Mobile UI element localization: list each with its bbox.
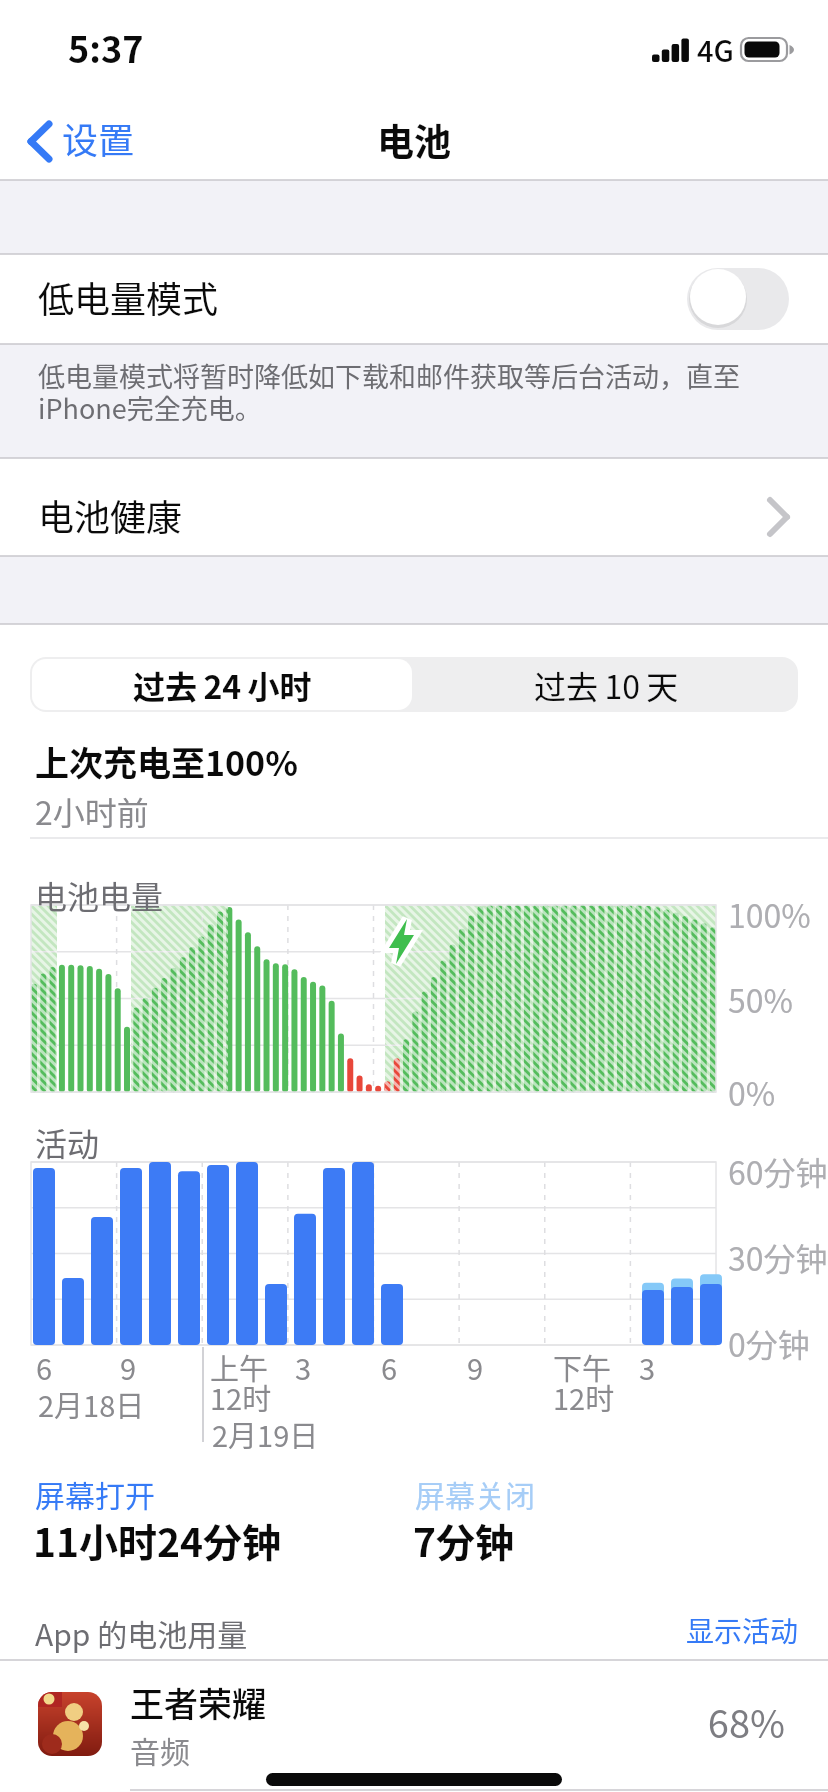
- staticText: App 的电池用量: [35, 1611, 248, 1654]
- staticText: 王者荣耀: [130, 1678, 266, 1727]
- staticText: 4G: [697, 28, 734, 70]
- staticText: 3: [295, 1346, 312, 1388]
- staticText: 5:37: [68, 21, 144, 73]
- button[interactable]: [0, 458, 828, 556]
- button[interactable]: 过去 10 天: [416, 659, 796, 710]
- staticText: 活动: [35, 1119, 100, 1165]
- staticText: 2小时前: [35, 788, 149, 834]
- staticText: 0%: [728, 1069, 776, 1115]
- staticText: 7分钟: [413, 1512, 515, 1568]
- staticText: 显示活动: [686, 1610, 799, 1651]
- staticText: iPhone完全充电。: [38, 388, 262, 427]
- staticText: 11小时24分钟: [33, 1512, 282, 1568]
- staticText: 电池: [0, 113, 828, 167]
- staticText: 上午: [210, 1346, 269, 1388]
- staticText: 电池健康: [38, 489, 183, 541]
- staticText: 12时: [553, 1376, 615, 1418]
- staticText: 0分钟: [728, 1320, 810, 1366]
- staticText: 60分钟: [728, 1148, 828, 1194]
- staticText: 下午: [553, 1346, 612, 1388]
- staticText: 过去 24 小时: [133, 662, 312, 708]
- staticText: 音频: [130, 1728, 190, 1771]
- button[interactable]: [0, 254, 828, 344]
- button[interactable]: [0, 1662, 828, 1790]
- staticText: 100%: [728, 891, 811, 937]
- staticText: 屏幕打开: [35, 1472, 155, 1515]
- staticText: 6: [381, 1346, 398, 1388]
- staticText: 2月19日: [212, 1413, 319, 1455]
- button[interactable]: [687, 268, 789, 330]
- staticText: 68%: [585, 1694, 785, 1749]
- staticText: 12时: [210, 1376, 272, 1418]
- button[interactable]: 显示活动: [620, 1608, 800, 1652]
- staticText: 低电量模式将暂时降低如下载和邮件获取等后台活动，直至: [38, 356, 740, 395]
- staticText: 上次充电至100%: [35, 737, 298, 786]
- staticText: 50%: [728, 976, 793, 1022]
- staticText: 2月18日: [38, 1383, 145, 1425]
- staticText: 低电量模式: [38, 271, 219, 323]
- staticText: 3: [639, 1346, 656, 1388]
- button[interactable]: 过去 24 小时: [32, 659, 412, 710]
- staticText: 9: [467, 1346, 484, 1388]
- button[interactable]: [24, 116, 144, 168]
- staticText: 屏幕关闭: [415, 1472, 535, 1515]
- staticText: 电池电量: [35, 872, 164, 918]
- staticText: 过去 10 天: [534, 662, 679, 708]
- staticText: 30分钟: [728, 1234, 828, 1280]
- staticText: 设置: [62, 112, 135, 164]
- staticText: 6: [36, 1346, 53, 1388]
- staticText: 9: [120, 1346, 137, 1388]
